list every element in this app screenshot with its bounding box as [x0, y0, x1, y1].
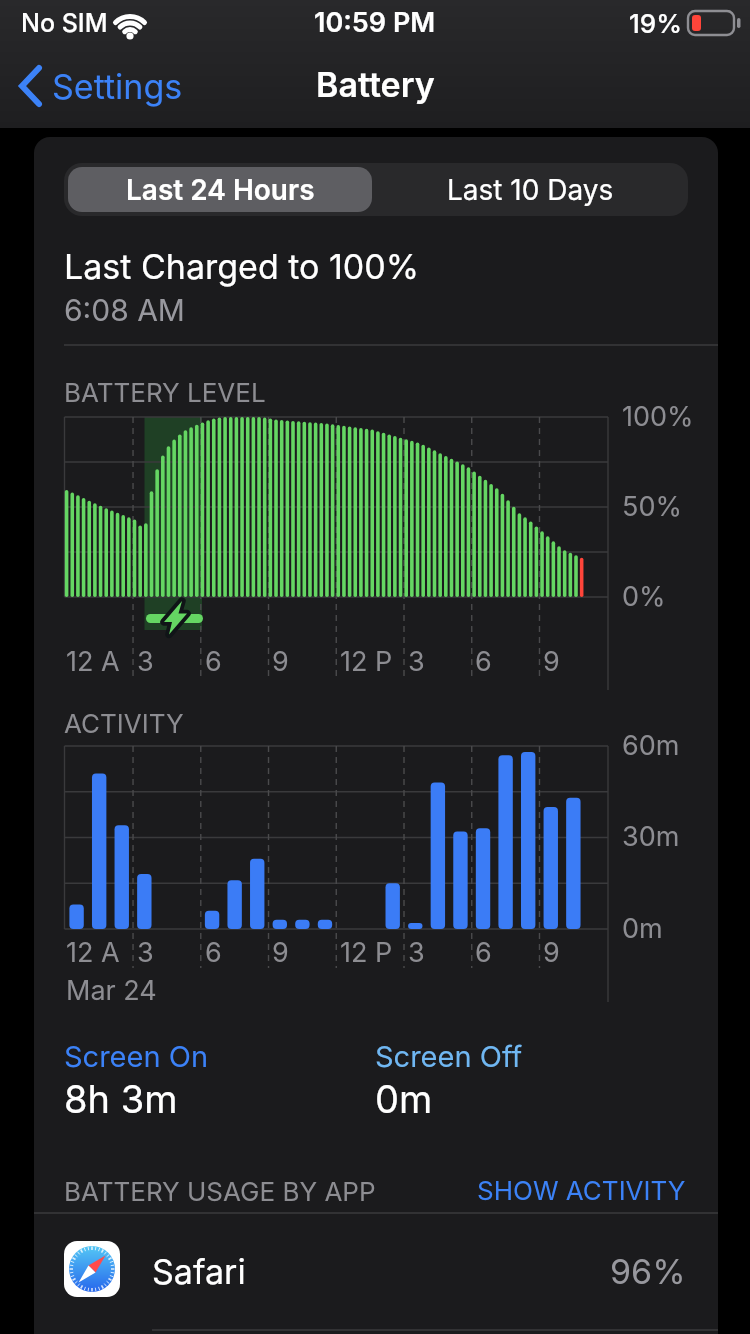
staticText: 3: [408, 645, 425, 678]
staticText: No SIM: [21, 8, 108, 38]
staticText: 3: [408, 936, 425, 969]
staticText: Last 10 Days: [447, 173, 614, 207]
staticText: Settings: [52, 66, 183, 107]
button[interactable]: [34, 1214, 718, 1330]
staticText: Safari: [152, 1251, 246, 1292]
staticText: 9: [272, 645, 289, 678]
staticText: BATTERY USAGE BY APP: [64, 1176, 376, 1207]
staticText: Battery: [316, 64, 435, 105]
staticText: Mar 24: [66, 974, 157, 1007]
button[interactable]: Last 10 Days: [376, 167, 684, 212]
staticText: Last 24 Hours: [126, 173, 315, 207]
staticText: ACTIVITY: [64, 708, 184, 739]
staticText: 60m: [622, 729, 680, 762]
staticText: 8h 3m: [64, 1076, 178, 1122]
staticText: 12 A: [66, 936, 120, 969]
staticText: 12 P: [340, 645, 393, 678]
staticText: 6: [475, 645, 492, 678]
staticText: 6:08 AM: [64, 292, 185, 328]
staticText: 3: [137, 936, 154, 969]
staticText: 50%: [622, 490, 682, 523]
staticText: 9: [543, 645, 560, 678]
button[interactable]: Last 24 Hours: [68, 167, 372, 212]
staticText: 96%: [610, 1251, 686, 1292]
staticText: 0m: [622, 912, 663, 945]
staticText: 9: [543, 936, 560, 969]
staticText: 12 P: [340, 936, 393, 969]
staticText: 10:59 PM: [314, 6, 436, 39]
staticText: 19%: [629, 8, 682, 39]
button[interactable]: SHOW ACTIVITY: [456, 1168, 686, 1212]
staticText: 100%: [622, 400, 694, 433]
staticText: 12 A: [66, 645, 120, 678]
staticText: Last Charged to 100%: [64, 246, 420, 287]
button[interactable]: [14, 58, 194, 114]
staticText: 6: [205, 645, 222, 678]
staticText: 6: [205, 936, 222, 969]
staticText: Screen Off: [375, 1039, 523, 1074]
staticText: Screen On: [64, 1039, 209, 1074]
staticText: 0m: [375, 1076, 433, 1122]
staticText: 30m: [622, 820, 680, 853]
staticText: 6: [475, 936, 492, 969]
staticText: 3: [137, 645, 154, 678]
staticText: 0%: [622, 580, 666, 613]
staticText: BATTERY LEVEL: [64, 377, 266, 408]
staticText: 9: [272, 936, 289, 969]
staticText: SHOW ACTIVITY: [477, 1175, 686, 1206]
